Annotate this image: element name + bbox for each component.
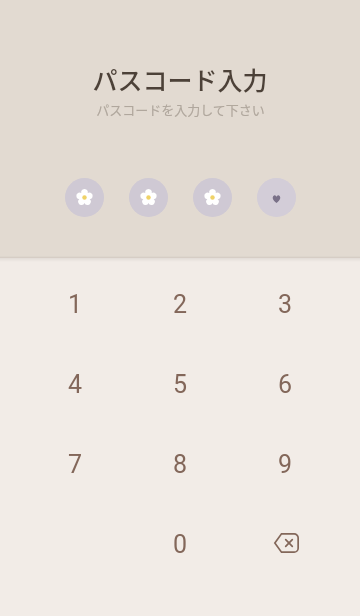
staticText: 7 xyxy=(68,450,83,479)
staticText: 3 xyxy=(278,290,293,319)
staticText: 8 xyxy=(173,450,188,479)
staticText: 2 xyxy=(173,290,188,319)
staticText: 1 xyxy=(68,290,83,319)
staticText: パスコードを入力して下さい xyxy=(96,100,265,119)
staticText: 4 xyxy=(68,370,83,399)
staticText: 9 xyxy=(278,450,293,479)
button[interactable]: 3 xyxy=(233,264,338,344)
button[interactable]: 7 xyxy=(23,424,128,504)
button[interactable]: 1 xyxy=(23,264,128,344)
button[interactable]: 5 xyxy=(128,344,233,424)
staticText: パスコード入力 xyxy=(92,61,268,97)
button[interactable]: 4 xyxy=(23,344,128,424)
other: Backspace xyxy=(266,524,306,564)
button[interactable]: Backspace xyxy=(233,504,338,584)
button[interactable]: 9 xyxy=(233,424,338,504)
button[interactable]: 0 xyxy=(128,504,233,584)
staticText: 0 xyxy=(173,530,188,559)
staticText: 6 xyxy=(278,370,293,399)
staticText: 5 xyxy=(173,370,188,399)
button[interactable]: 6 xyxy=(233,344,338,424)
button[interactable]: 2 xyxy=(128,264,233,344)
button[interactable]: 8 xyxy=(128,424,233,504)
